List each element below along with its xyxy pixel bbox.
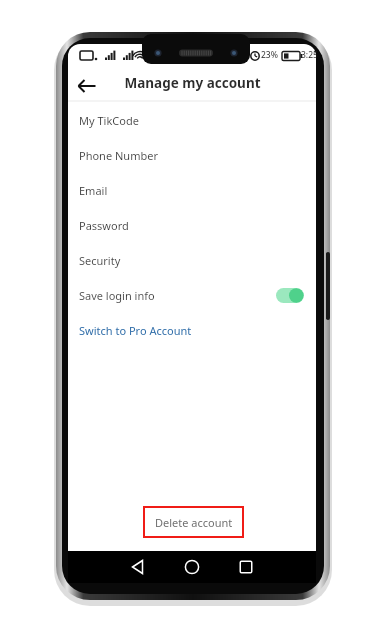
button[interactable]: Home	[178, 553, 206, 581]
staticText: Security	[79, 253, 121, 268]
staticText: Switch to Pro Account	[79, 323, 192, 338]
button[interactable]: Email	[68, 173, 316, 208]
staticText: Password	[79, 218, 129, 233]
staticText: Phone Number	[79, 148, 158, 163]
button[interactable]: Save login info toggle	[276, 288, 304, 303]
button[interactable]: My TikCode	[68, 103, 316, 138]
staticText: Manage my account	[124, 74, 261, 92]
button[interactable]: Save login info	[68, 278, 316, 313]
staticText: 23%	[261, 49, 278, 61]
staticText: Save login info	[79, 288, 155, 303]
button[interactable]: Delete account	[143, 506, 244, 538]
button[interactable]: Security	[68, 243, 316, 278]
staticText: Delete account	[155, 515, 233, 530]
button[interactable]: Switch to Pro Account	[68, 313, 316, 348]
button[interactable]: Password	[68, 208, 316, 243]
button[interactable]: Recent apps	[232, 553, 260, 581]
button[interactable]: Back	[124, 553, 152, 581]
button[interactable]: Phone Number	[68, 138, 316, 173]
button[interactable]: Back	[70, 69, 104, 103]
staticText: 3:25	[301, 49, 318, 61]
staticText: My TikCode	[79, 113, 139, 128]
staticText: Email	[79, 183, 108, 198]
